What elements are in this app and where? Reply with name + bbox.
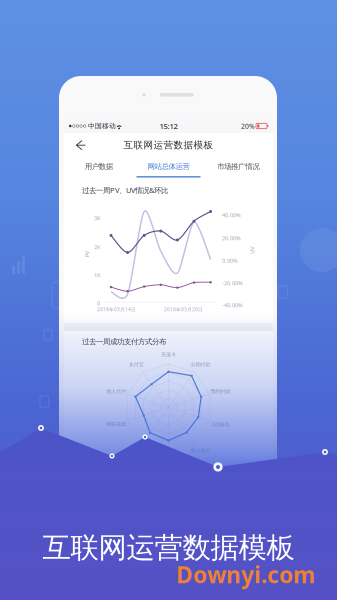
staticText: 过去一周PV、UV情况&环比 (82, 185, 168, 195)
staticText: PV (84, 250, 90, 258)
staticText: 0.00% (222, 257, 238, 264)
staticText: 40.00% (222, 211, 241, 219)
staticText: 1K (94, 271, 100, 279)
staticText: 用户数据 (85, 162, 113, 171)
staticText: 他人代付 (106, 388, 126, 394)
staticText: 支付宝 (129, 361, 144, 368)
button[interactable]: 网站总体运营 (134, 157, 203, 180)
button[interactable]: 市场推广情况 (203, 157, 273, 180)
staticText: UV (248, 246, 255, 254)
staticText: 0 (97, 299, 100, 307)
staticText: 预到付款 (211, 388, 231, 394)
staticText: 中国移动 (86, 122, 116, 130)
staticText: 银联在线 (106, 421, 126, 427)
staticText: QQ钱包 (212, 421, 230, 428)
staticText: 15:12 (159, 121, 177, 131)
button[interactable]: 用户数据 (64, 157, 134, 180)
staticText: 互联网运营数据模板 (123, 139, 213, 151)
staticText: 充值卡 (161, 351, 176, 358)
staticText: 市场推广情况 (217, 162, 259, 171)
staticText: 20% (241, 121, 255, 131)
staticText: 3K (94, 214, 100, 222)
staticText: -40.00% (222, 301, 243, 309)
staticText: 2018年03月14日 (97, 306, 136, 313)
staticText: -20.00% (222, 279, 243, 287)
staticText: 分期付款 (191, 361, 211, 368)
button[interactable]: Back (70, 137, 92, 153)
staticText: Downyi.com (176, 559, 315, 590)
staticText: 互联网运营数据模板 (42, 530, 294, 566)
staticText: 20.00% (222, 234, 241, 242)
staticText: 网上银行 (191, 447, 211, 454)
staticText: 2K (94, 243, 100, 251)
staticText: 网站总体运营 (147, 162, 189, 171)
staticText: 过去一周成功支付方式分布 (82, 337, 166, 346)
staticText: 2018年03月20日 (164, 306, 203, 313)
